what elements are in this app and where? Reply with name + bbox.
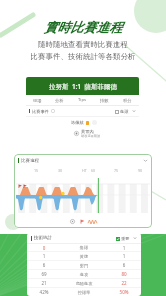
staticText: 15 [34,168,39,173]
staticText: 21 [27,280,61,286]
other: Expand stats [133,236,137,240]
staticText: 42% [27,289,61,295]
staticText: 比賽事件、技術統計等各類分析 [0,52,166,61]
staticText: 0 [27,245,61,251]
button[interactable]: 指數 [93,95,116,105]
button[interactable]: 現場 [26,95,48,105]
staticText: 75 [114,168,119,173]
other: Collapse [143,158,148,163]
staticText: 隨時隨地查看實時比賽進程 [0,40,166,49]
staticText: 控球率 [61,290,107,295]
other: Info [51,109,55,113]
button[interactable]: 拉努斯 1:1 薩斯菲爾德 [26,77,139,95]
staticText: 莫雷內 [81,129,94,134]
staticText: 1 [27,253,61,259]
staticText: 比賽進程 [21,158,39,164]
button[interactable]: 积分 [116,95,139,105]
staticText: 危險進攻 [61,281,107,286]
staticText: 69 [27,271,61,277]
staticText: 50% [107,289,141,295]
staticText: 30 [58,168,63,173]
staticText: 6 [107,262,141,268]
staticText: 积分 [123,98,132,103]
staticText: 黃牌 [61,254,107,259]
staticText: 角球 [61,245,107,250]
other: Expand [132,109,136,113]
staticText: 洛佩茲 [71,120,84,125]
staticText: 分析 [55,98,64,103]
staticText: 60 [91,168,96,173]
button[interactable]: 進球 [115,109,129,114]
staticText: 1 [107,253,141,259]
staticText: 現場 [33,98,42,103]
staticText: 1 [107,245,141,251]
staticText: 助攻克雷斯波 [81,134,101,138]
staticText: 進攻 [61,272,107,277]
staticText: HT [82,168,87,173]
staticText: 比賽事件 [32,109,49,114]
button[interactable]: Tips [70,95,93,105]
staticText: 技術統計 [34,235,52,241]
staticText: 80 [107,271,141,277]
staticText: 重要 [121,236,130,241]
staticText: 進球 [120,109,129,114]
staticText: 指數 [100,98,109,103]
staticText: 22 [107,280,141,286]
staticText: 射門 [61,263,107,268]
staticText: 拉努斯 1:1 薩斯菲爾德 [49,82,117,91]
staticText: Tips [78,97,86,103]
staticText: 90 [138,168,143,173]
button[interactable]: 分析 [48,95,70,105]
staticText: 實時比賽進程 [0,19,166,35]
staticText: 6 [27,262,61,268]
button[interactable]: 重要 [116,236,130,241]
